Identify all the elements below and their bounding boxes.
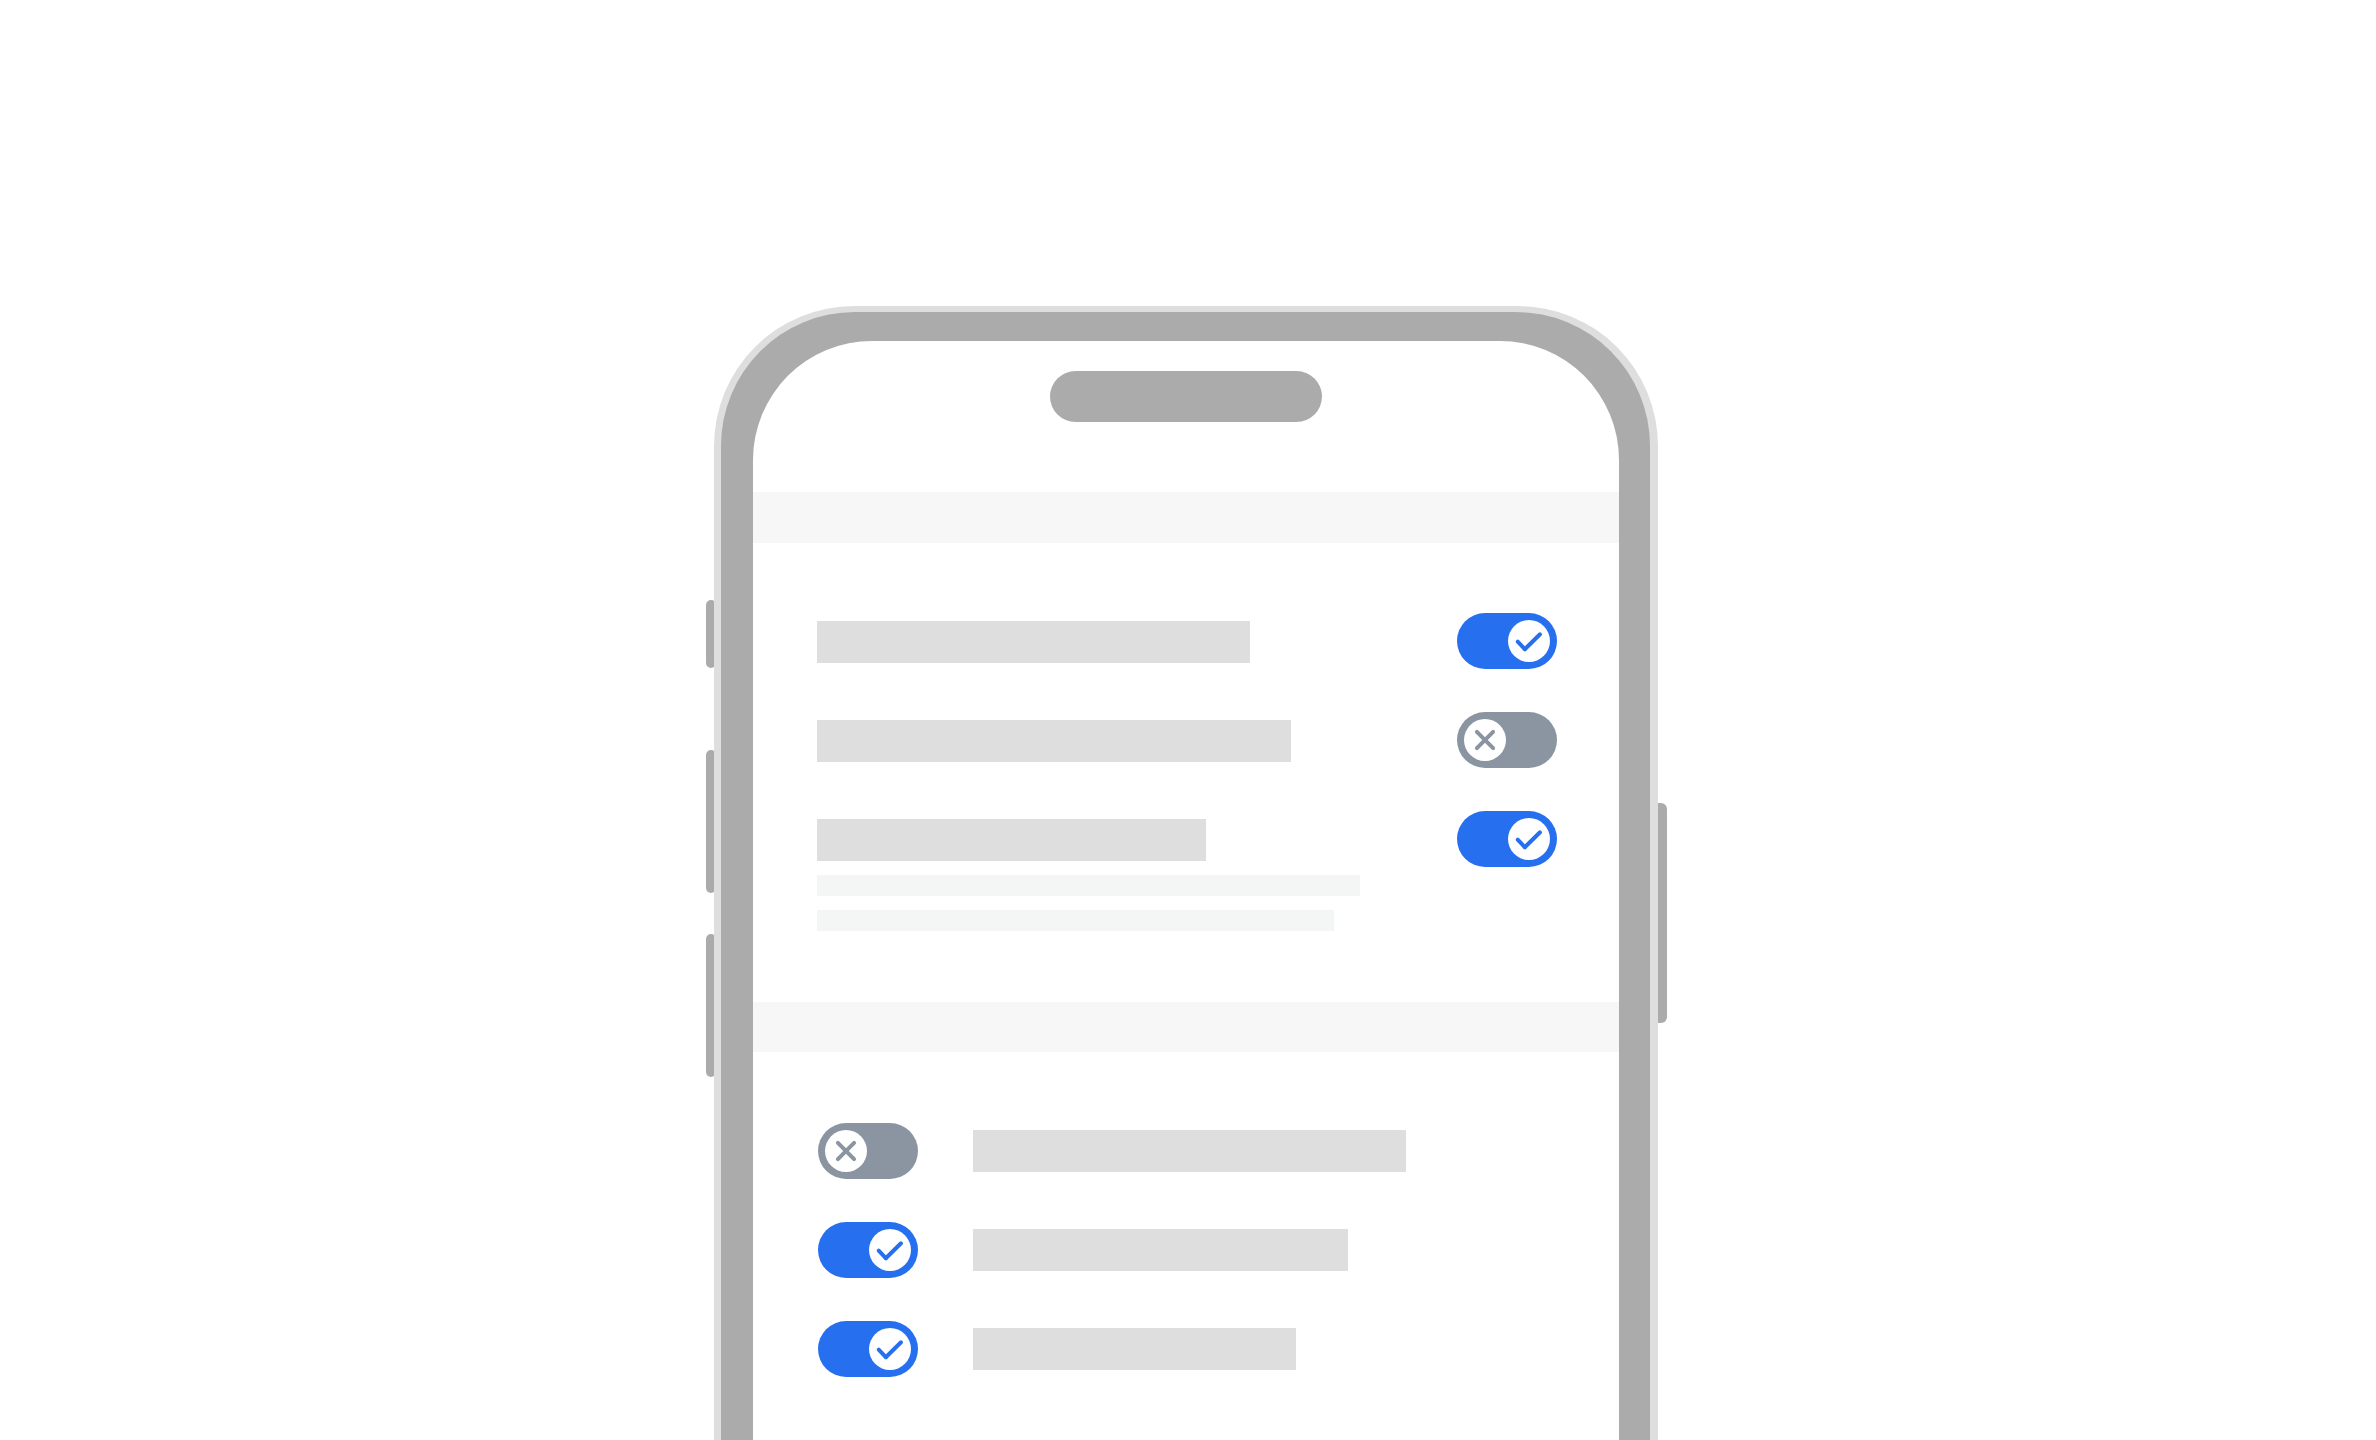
button[interactable]: Setting on	[818, 1222, 918, 1278]
button[interactable]: Setting on	[1457, 811, 1557, 867]
button[interactable]: Setting on	[818, 1222, 1406, 1278]
button[interactable]: Setting off	[817, 712, 1557, 768]
button[interactable]: Power	[1648, 803, 1667, 1023]
button[interactable]: Setting on	[818, 1321, 918, 1377]
button[interactable]: Setting off	[818, 1123, 1406, 1179]
button[interactable]: Setting on	[1457, 613, 1557, 669]
button[interactable]: Setting off	[818, 1123, 918, 1179]
button[interactable]: Setting on	[817, 811, 1557, 867]
button[interactable]: Setting off	[1457, 712, 1557, 768]
button[interactable]: Volume down	[706, 934, 716, 1077]
button[interactable]: Mute switch	[706, 600, 716, 668]
button[interactable]: Volume up	[706, 750, 716, 893]
other: Front camera and sensors	[1050, 371, 1322, 422]
button[interactable]: Setting on	[818, 1321, 1406, 1377]
button[interactable]: Setting on	[817, 613, 1557, 669]
